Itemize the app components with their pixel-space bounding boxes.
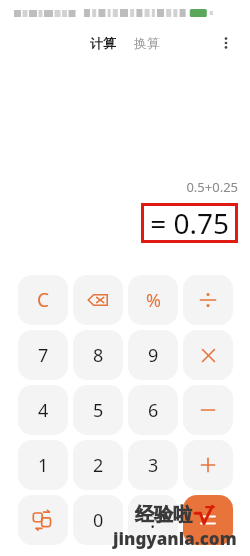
button[interactable]: 0 [73,495,123,545]
staticText: 计算 [90,35,116,51]
staticText: 经验啦 [135,503,192,527]
button[interactable]: 5 [73,385,123,435]
staticText: 4 [38,398,49,423]
button[interactable]: 4 [18,385,68,435]
button[interactable]: 2 [73,440,123,490]
button[interactable]: Unit conversion [18,495,68,545]
button[interactable]: 7 [18,330,68,380]
button[interactable]: 换算 [128,32,166,54]
staticText: 0.5+0.25 [186,178,238,196]
button[interactable]: 1 [18,440,68,490]
button[interactable]: Plus [183,440,233,490]
staticText: 换算 [134,35,160,51]
button[interactable]: % [128,275,178,325]
staticText: 8 [93,343,104,368]
button[interactable]: More options [214,31,238,55]
staticText: 6 [148,398,159,423]
staticText: 2 [93,453,104,478]
button[interactable]: 6 [128,385,178,435]
button[interactable]: Divide [183,275,233,325]
button[interactable]: Minus [183,385,233,435]
staticText: C [37,287,50,313]
button[interactable]: Multiply [183,330,233,380]
button[interactable]: Delete [73,275,123,325]
staticText: 7 [38,343,49,368]
staticText: 1 [38,453,49,478]
staticText: 3 [148,453,159,478]
staticText: 0 [93,508,104,533]
staticText: 5 [93,398,104,423]
staticText: jingyanla.com [113,527,237,550]
button[interactable]: 3 [128,440,178,490]
button[interactable]: Equals [183,495,233,545]
button[interactable]: 计算 [84,32,122,54]
button[interactable]: . [128,495,178,545]
staticText: 9 [148,343,159,368]
staticText: = 0.75 [150,204,229,242]
button[interactable]: 9 [128,330,178,380]
staticText: . [150,507,156,534]
button[interactable]: C [18,275,68,325]
button[interactable]: 8 [73,330,123,380]
staticText: % [146,288,161,313]
